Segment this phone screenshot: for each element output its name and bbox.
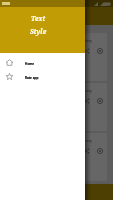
staticText: Rate app: [25, 76, 39, 80]
button[interactable]: Share: [83, 97, 91, 105]
staticText: Home: [25, 62, 35, 66]
button[interactable]: Lorem ipsum dolor sit amet consectetur a…: [6, 33, 107, 81]
staticText: Text: [31, 14, 46, 23]
button[interactable]: Copy: [96, 47, 104, 55]
button[interactable]: Lorem ipsum dolor sit amet consectetur a…: [6, 133, 107, 181]
button[interactable]: Share: [83, 47, 91, 55]
staticText: Home: [25, 62, 35, 66]
button[interactable]: Share: [83, 147, 91, 155]
button[interactable]: Home: [0, 55, 85, 69]
button[interactable]: Lorem ipsum dolor sit amet consectetur a…: [6, 83, 107, 131]
staticText: Style: [30, 27, 47, 36]
button[interactable]: Rate app: [0, 69, 85, 83]
button[interactable]: Copy: [96, 97, 104, 105]
staticText: Lorem ipsum dolor sit amet consectetur a…: [11, 38, 92, 43]
staticText: Home: [25, 62, 35, 66]
staticText: Rate app: [25, 76, 39, 80]
staticText: Lorem ipsum dolor sit amet consectetur a…: [11, 88, 92, 93]
button[interactable]: Copy: [96, 147, 104, 155]
staticText: Lorem ipsum dolor sit amet consectetur a…: [11, 138, 92, 143]
staticText: Rate app: [25, 76, 39, 80]
